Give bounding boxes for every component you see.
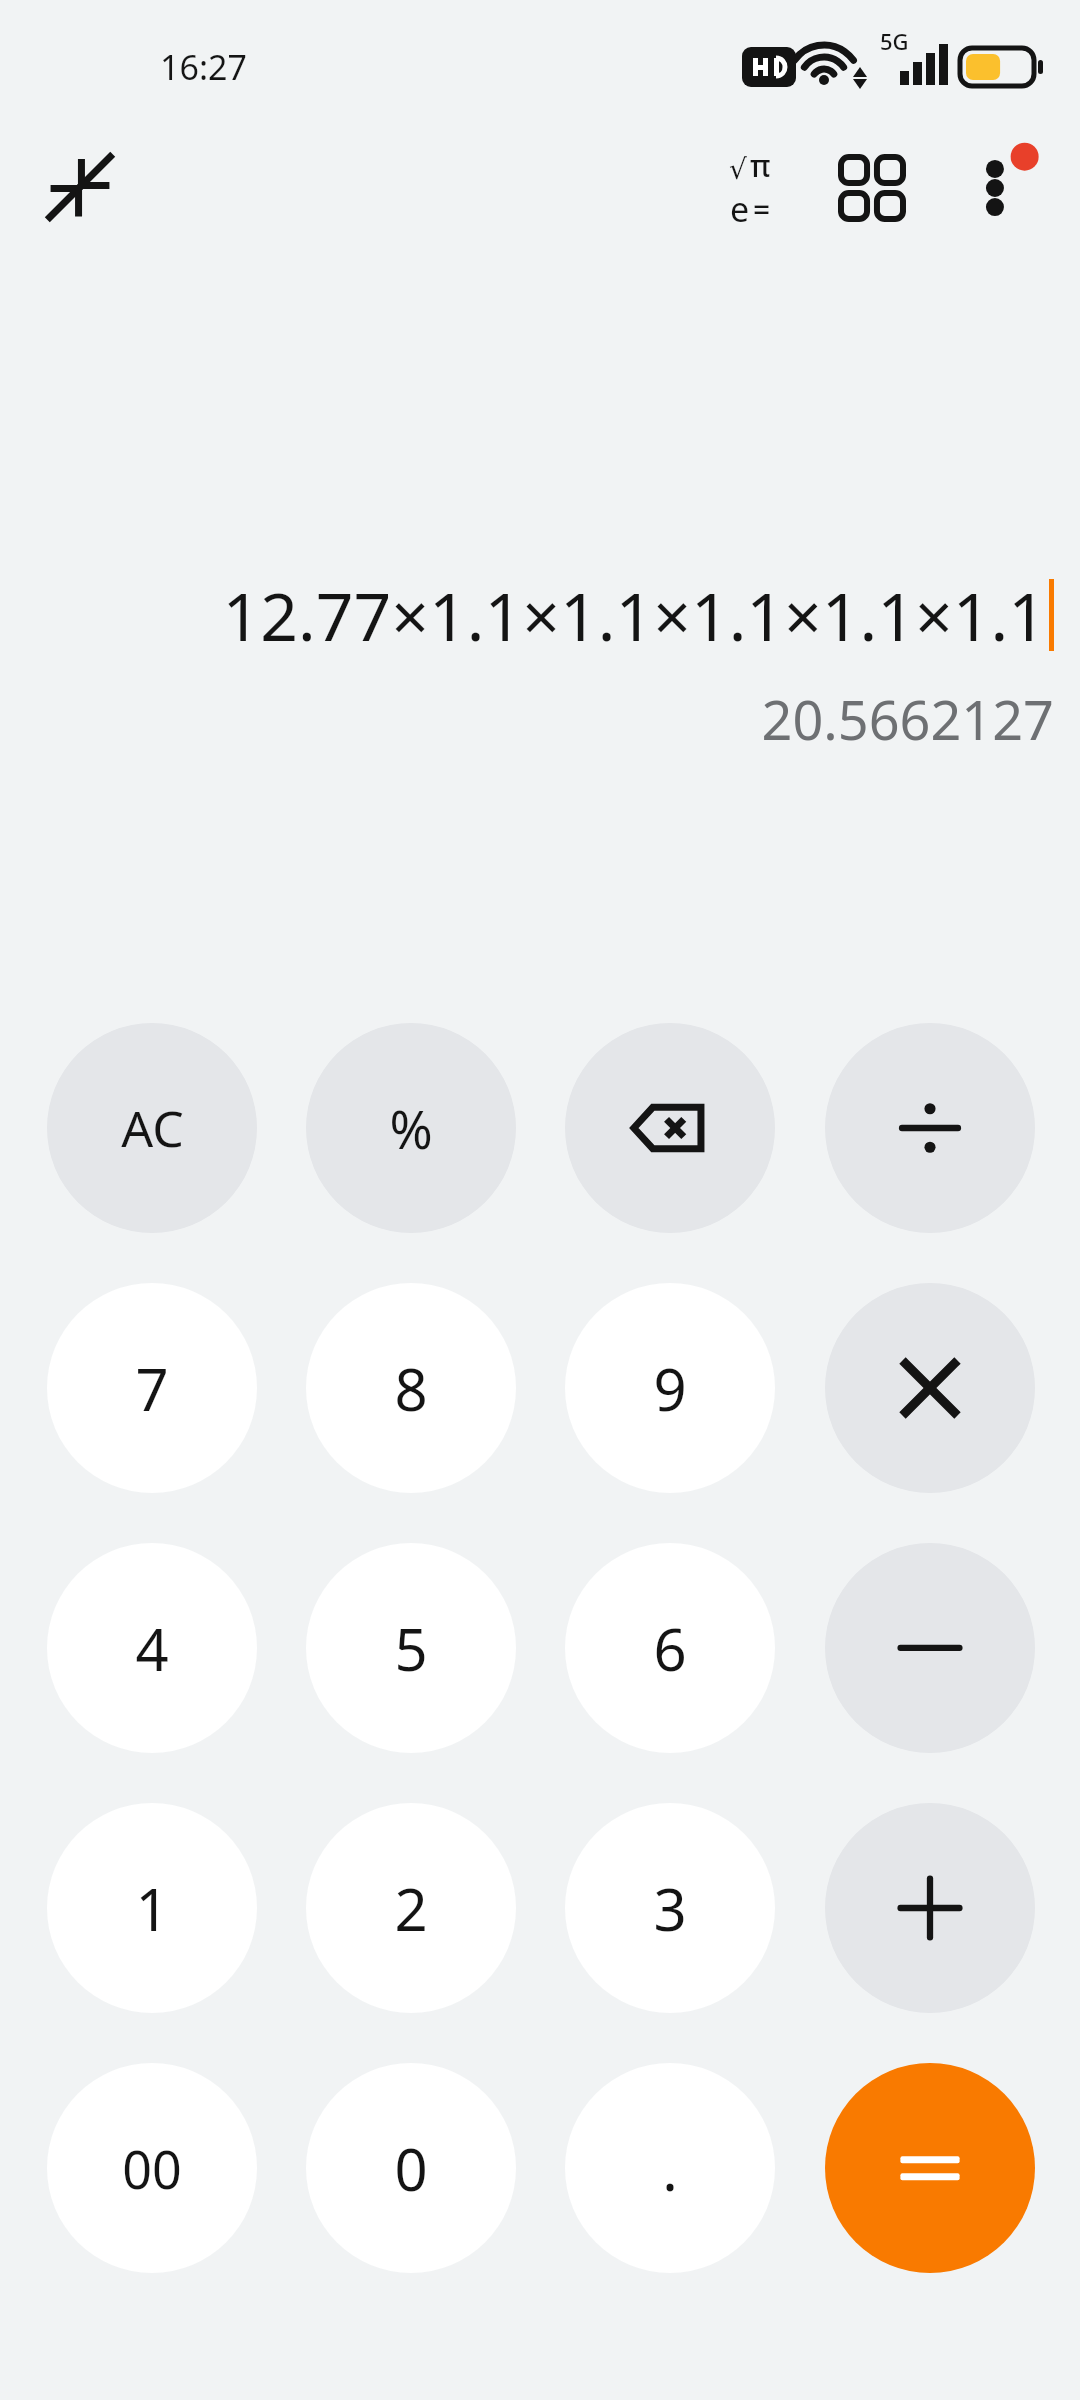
button[interactable]: Plus bbox=[825, 1803, 1035, 2013]
staticText: = bbox=[753, 189, 771, 230]
staticText: 20.5662127 bbox=[761, 682, 1054, 756]
staticText: 6 bbox=[653, 1609, 687, 1688]
staticText: 3 bbox=[653, 1869, 687, 1948]
staticText: 4 bbox=[135, 1609, 169, 1688]
staticText: 2 bbox=[394, 1869, 428, 1948]
button[interactable]: 3 bbox=[565, 1803, 775, 2013]
button[interactable]: 9 bbox=[565, 1283, 775, 1493]
button[interactable]: Equals bbox=[825, 2063, 1035, 2273]
staticText: 0 bbox=[394, 2129, 428, 2208]
button[interactable]: 1 bbox=[47, 1803, 257, 2013]
button[interactable]: Multiply bbox=[825, 1283, 1035, 1493]
staticText: . bbox=[662, 2129, 678, 2208]
staticText: AC bbox=[121, 1094, 184, 1162]
staticText: % bbox=[389, 1093, 433, 1164]
staticText: 00 bbox=[122, 2133, 182, 2204]
button[interactable]: AC bbox=[47, 1023, 257, 1233]
button[interactable]: Collapse bbox=[28, 135, 132, 239]
staticText: √ bbox=[729, 153, 747, 186]
staticText: 5G bbox=[880, 26, 909, 56]
button[interactable]: 4 bbox=[47, 1543, 257, 1753]
button[interactable]: Minus bbox=[825, 1543, 1035, 1753]
staticText: 12.77×1.1×1.1×1.1×1.1×1.1 bbox=[222, 570, 1046, 660]
button[interactable]: 8 bbox=[306, 1283, 516, 1493]
staticText: 16:27 bbox=[160, 44, 247, 90]
button[interactable]: History bbox=[816, 132, 928, 244]
button[interactable]: Divide bbox=[825, 1023, 1035, 1233]
button[interactable]: 6 bbox=[565, 1543, 775, 1753]
staticText: π bbox=[750, 145, 771, 186]
button[interactable]: 5 bbox=[306, 1543, 516, 1753]
button[interactable]: % bbox=[306, 1023, 516, 1233]
button[interactable]: . bbox=[565, 2063, 775, 2273]
staticText: 9 bbox=[653, 1349, 687, 1428]
button[interactable]: 7 bbox=[47, 1283, 257, 1493]
button[interactable]: Backspace bbox=[565, 1023, 775, 1233]
button[interactable]: 00 bbox=[47, 2063, 257, 2273]
button[interactable]: Scientific mode bbox=[694, 132, 806, 244]
staticText: e bbox=[730, 186, 750, 232]
staticText: 5 bbox=[394, 1609, 428, 1688]
staticText: 1 bbox=[135, 1869, 169, 1948]
staticText: 8 bbox=[394, 1349, 428, 1428]
button[interactable]: 2 bbox=[306, 1803, 516, 2013]
button[interactable]: More options bbox=[944, 132, 1056, 244]
staticText: 7 bbox=[135, 1349, 169, 1428]
button[interactable]: 0 bbox=[306, 2063, 516, 2273]
